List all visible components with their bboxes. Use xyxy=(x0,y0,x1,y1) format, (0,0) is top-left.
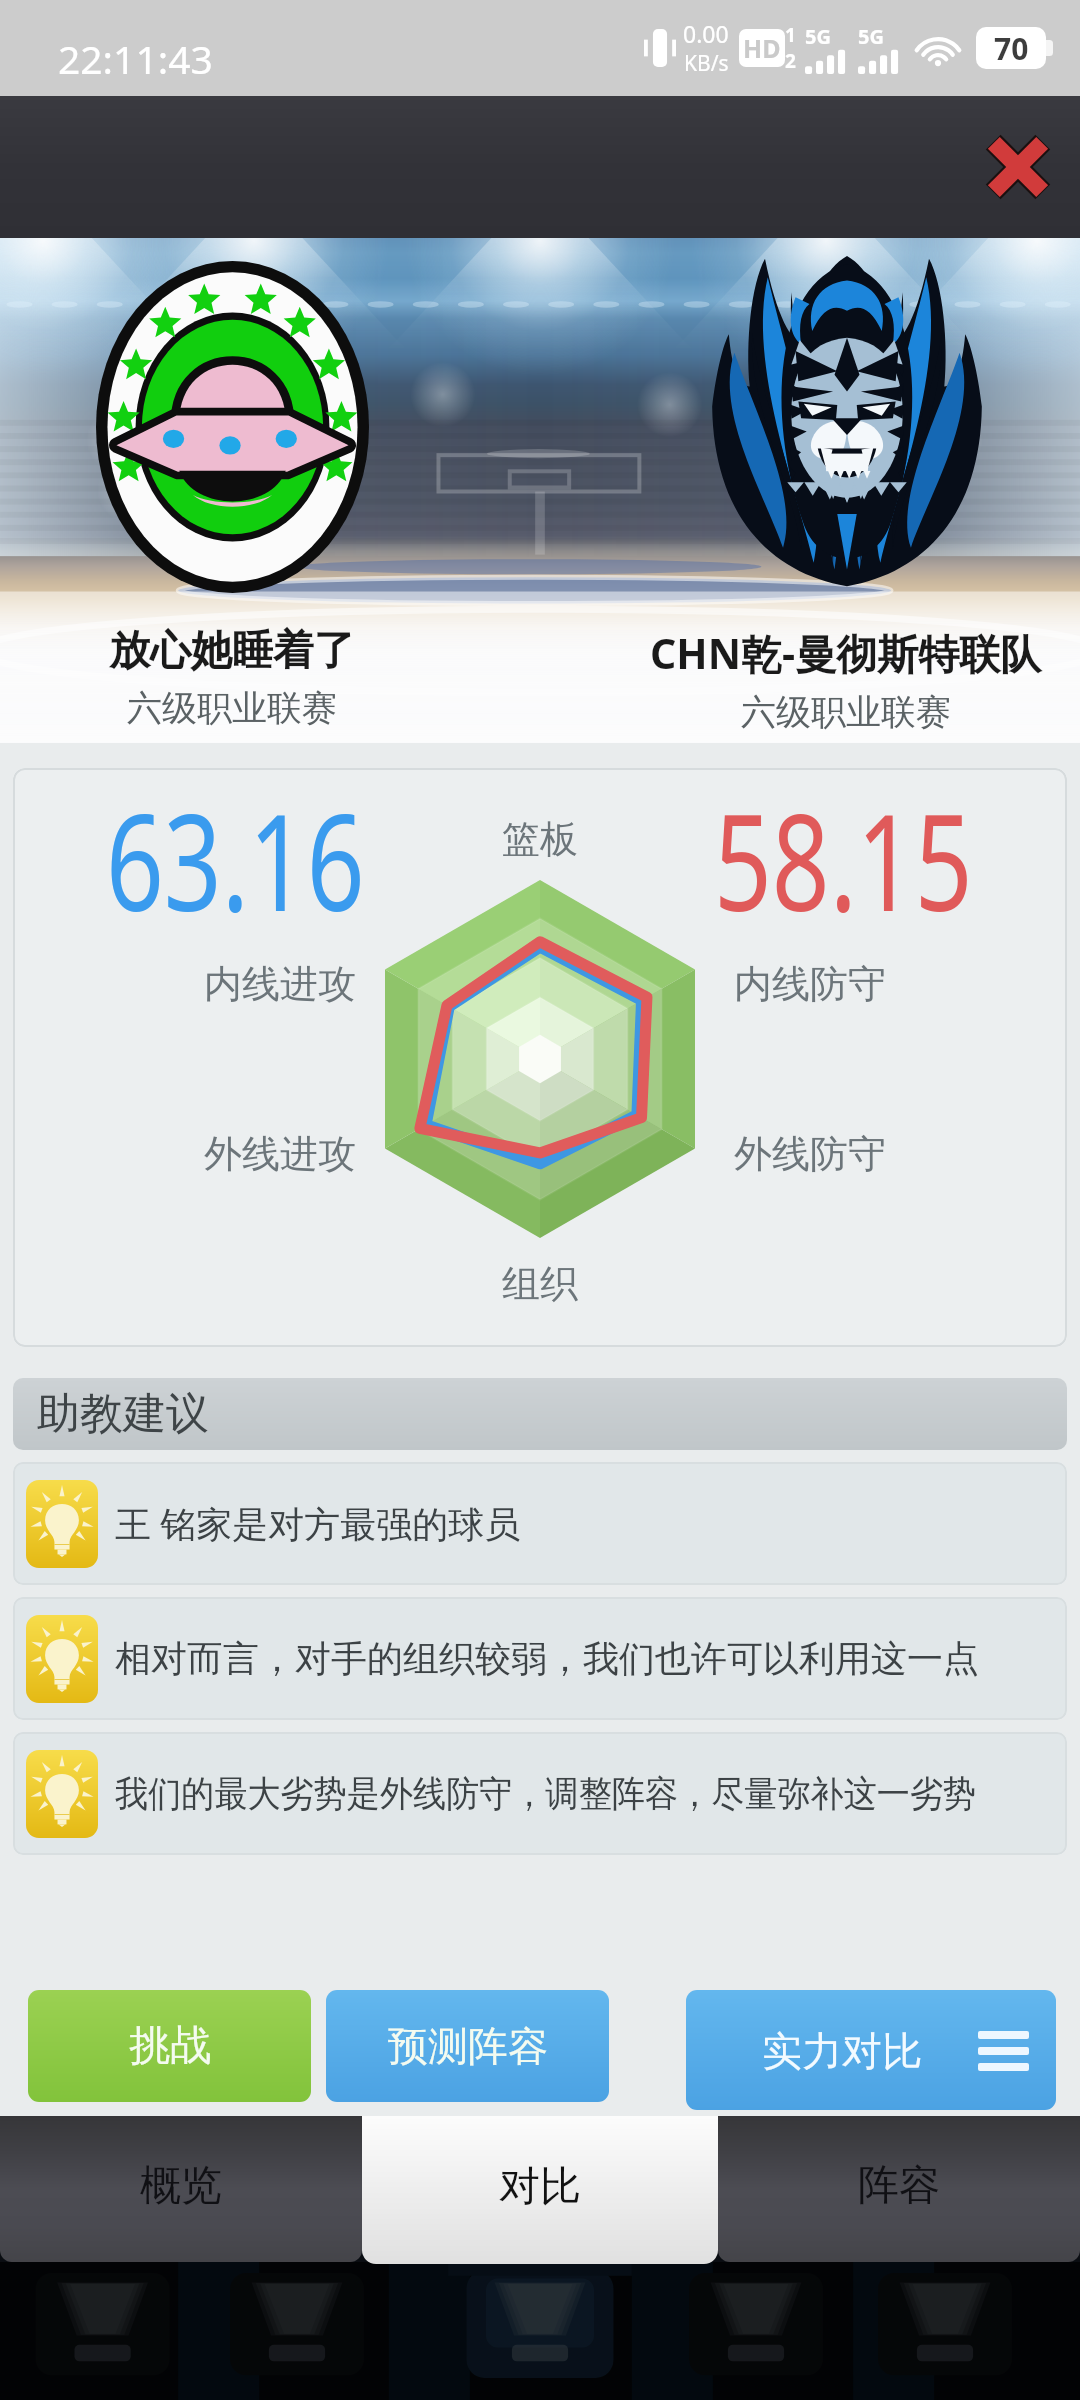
staticText: 0.00 xyxy=(683,18,729,49)
staticText: 阵容 xyxy=(858,2160,940,2212)
staticText: 70 xyxy=(994,28,1029,69)
staticText: 助教建议 xyxy=(37,1387,209,1441)
button[interactable]: 阵容 xyxy=(718,2116,1080,2262)
staticText: 我们的最大劣势是外线防守，调整阵容，尽量弥补这一劣势 xyxy=(115,1771,976,1816)
button[interactable]: Bottom nav item 5 xyxy=(864,2262,1080,2400)
staticText: 王 铭家是对方最强的球员 xyxy=(115,1499,521,1548)
staticText: 六级职业联赛 xyxy=(127,686,337,730)
staticText: 内线防守 xyxy=(734,960,886,1008)
button[interactable]: 概览 xyxy=(0,2116,362,2262)
staticText: CHN乾-曼彻斯特联队 xyxy=(650,625,1042,681)
staticText: 2 xyxy=(785,48,796,74)
button[interactable]: 实力对比 xyxy=(686,1990,1056,2110)
staticText: 实力对比 xyxy=(762,2026,922,2076)
staticText: 六级职业联赛 xyxy=(741,690,951,734)
button[interactable]: 对比 xyxy=(362,2116,718,2264)
staticText: 挑战 xyxy=(129,2020,211,2072)
staticText: 对比 xyxy=(499,2161,581,2213)
button[interactable]: Bottom nav item 3 xyxy=(432,2262,648,2400)
button[interactable]: Close xyxy=(968,117,1068,217)
button[interactable]: Bottom nav item 1 xyxy=(0,2262,216,2400)
staticText: 58.15 xyxy=(714,768,973,951)
staticText: 外线进攻 xyxy=(204,1130,356,1178)
button[interactable]: 相对而言，对手的组织较弱，我们也许可以利用这一点 xyxy=(13,1597,1067,1720)
button[interactable]: 我们的最大劣势是外线防守，调整阵容，尽量弥补这一劣势 xyxy=(13,1732,1067,1855)
staticText: 22:11:43 xyxy=(58,32,213,85)
button[interactable]: Bottom nav item 4 xyxy=(648,2262,864,2400)
staticText: 5G xyxy=(858,23,884,50)
staticText: 篮板 xyxy=(502,815,578,863)
staticText: 组织 xyxy=(502,1260,578,1308)
staticText: 5G xyxy=(805,23,831,50)
staticText: 外线防守 xyxy=(734,1130,886,1178)
staticText: 相对而言，对手的组织较弱，我们也许可以利用这一点 xyxy=(115,1636,979,1681)
staticText: 1 xyxy=(785,22,796,48)
staticText: 预测阵容 xyxy=(388,2021,548,2071)
staticText: 63.16 xyxy=(106,768,365,951)
button[interactable]: 王 铭家是对方最强的球员 xyxy=(13,1462,1067,1585)
staticText: HD xyxy=(743,31,781,65)
staticText: 内线进攻 xyxy=(204,960,356,1008)
staticText: KB/s xyxy=(684,49,729,78)
staticText: 放心她睡着了 xyxy=(109,625,355,677)
button[interactable]: 预测阵容 xyxy=(326,1990,609,2102)
button[interactable]: Bottom nav item 2 xyxy=(216,2262,432,2400)
staticText: 概览 xyxy=(140,2160,222,2212)
button[interactable]: 挑战 xyxy=(28,1990,311,2102)
